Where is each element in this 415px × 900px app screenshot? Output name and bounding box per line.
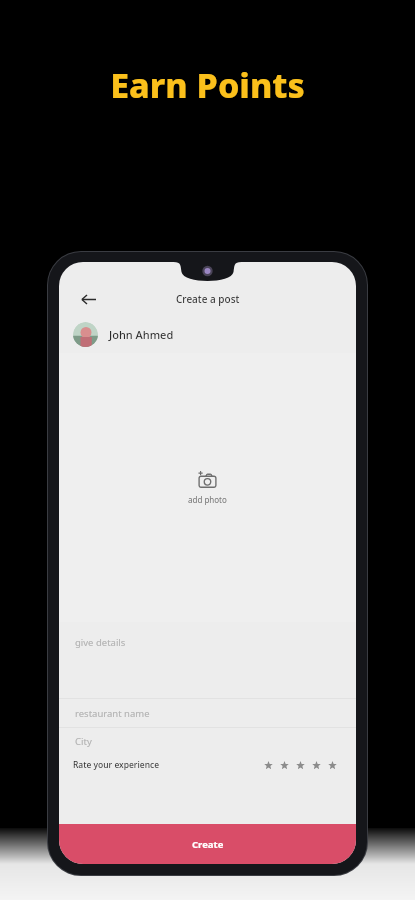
button[interactable]: Rate 4 star	[308, 757, 324, 773]
button[interactable]: Add photo	[59, 353, 356, 622]
staticText: Rate your experience	[73, 759, 160, 771]
staticText: City	[75, 735, 92, 748]
button[interactable]: Rate 3 star	[292, 757, 308, 773]
button[interactable]: Rate 2 star	[276, 757, 292, 773]
button[interactable]: Rate 1 star	[260, 757, 276, 773]
button[interactable]: City	[59, 728, 356, 754]
staticText: Earn Points	[110, 62, 305, 108]
staticText: Create a post	[176, 292, 240, 306]
staticText: add photo	[188, 494, 227, 505]
button[interactable]: Rate 5 star	[324, 757, 340, 773]
staticText: John Ahmed	[109, 327, 174, 342]
button[interactable]: Back	[73, 284, 103, 314]
button[interactable]: John Ahmed	[59, 316, 356, 353]
staticText: restaurant name	[75, 707, 150, 720]
staticText: Create	[192, 838, 224, 851]
button[interactable]: Create	[59, 824, 356, 864]
button[interactable]: give details	[59, 622, 356, 698]
button[interactable]: restaurant name	[59, 699, 356, 727]
staticText: give details	[75, 636, 126, 649]
